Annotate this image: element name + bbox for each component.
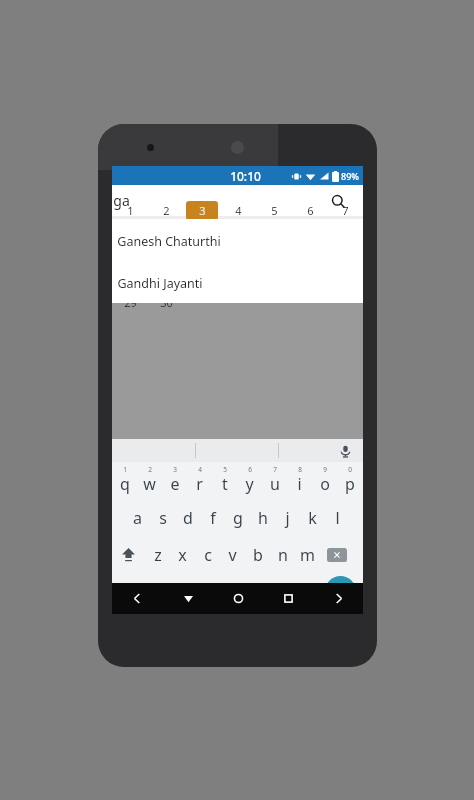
button[interactable]: Next: [313, 583, 363, 614]
staticText: 9: [163, 226, 170, 241]
button[interactable]: 1: [112, 462, 137, 499]
button[interactable]: Ganesh Chaturthi: [112, 219, 363, 263]
staticText: v: [228, 544, 237, 566]
staticText: d: [183, 507, 193, 529]
button[interactable]: Home: [213, 583, 263, 614]
button[interactable]: Shift: [112, 536, 145, 573]
button[interactable]: [172, 573, 294, 609]
button[interactable]: Previous: [112, 583, 163, 614]
button[interactable]: ?123: [112, 573, 148, 609]
button[interactable]: Backspace: [320, 536, 353, 573]
button[interactable]: .: [294, 573, 318, 609]
button[interactable]: 7: [262, 462, 287, 499]
staticText: 5: [223, 465, 227, 474]
button[interactable]: d: [175, 499, 200, 536]
staticText: 6: [248, 465, 252, 474]
button[interactable]: 9: [312, 462, 337, 499]
staticText: ,: [158, 578, 162, 597]
button[interactable]: Back: [163, 583, 213, 614]
button[interactable]: k: [300, 499, 325, 536]
button[interactable]: 6: [294, 201, 326, 220]
button[interactable]: 3: [186, 201, 218, 220]
button[interactable]: Search: [327, 190, 349, 212]
button[interactable]: h: [250, 499, 275, 536]
button[interactable]: j: [275, 499, 300, 536]
button[interactable]: Gandhi Jayanti: [112, 263, 363, 303]
button[interactable]: 6: [237, 462, 262, 499]
button[interactable]: 22: [114, 270, 146, 289]
staticText: y: [245, 473, 254, 495]
button[interactable]: 29: [114, 293, 146, 312]
staticText: 9: [323, 465, 327, 474]
button[interactable]: Recents: [263, 583, 313, 614]
button[interactable]: 5: [212, 462, 237, 499]
button[interactable]: 3: [162, 462, 187, 499]
button[interactable]: ,: [148, 573, 172, 609]
button[interactable]: b: [245, 536, 270, 573]
button[interactable]: s: [150, 499, 175, 536]
button[interactable]: 2: [137, 462, 162, 499]
staticText: 8: [298, 465, 302, 474]
staticText: i: [297, 473, 302, 495]
staticText: z: [154, 544, 162, 566]
button[interactable]: x: [170, 536, 195, 573]
button[interactable]: 8: [287, 462, 312, 499]
staticText: g: [233, 507, 243, 529]
button[interactable]: Voice input: [337, 443, 353, 459]
button[interactable]: g: [225, 499, 250, 536]
button[interactable]: 5: [258, 201, 290, 220]
button[interactable]: ga: [112, 185, 363, 216]
button[interactable]: 9: [150, 224, 182, 243]
staticText: 3: [199, 203, 206, 218]
button[interactable]: l: [325, 499, 350, 536]
staticText: f: [210, 507, 216, 529]
button[interactable]: 10: [186, 224, 218, 243]
staticText: w: [143, 473, 156, 495]
button[interactable]: 1: [114, 201, 146, 220]
staticText: 2: [163, 203, 170, 218]
staticText: 7: [342, 203, 349, 218]
button[interactable]: 0: [337, 462, 362, 499]
button[interactable]: v: [220, 536, 245, 573]
staticText: n: [278, 544, 288, 566]
button[interactable]: Enter: [318, 573, 363, 609]
button[interactable]: a: [125, 499, 150, 536]
button[interactable]: 4: [187, 462, 212, 499]
staticText: l: [335, 507, 340, 529]
button[interactable]: 23: [150, 270, 182, 289]
staticText: 0: [348, 465, 352, 474]
button[interactable]: 24: [186, 270, 218, 289]
button[interactable]: 30: [150, 293, 182, 312]
button[interactable]: 8: [114, 224, 146, 243]
button[interactable]: n: [270, 536, 295, 573]
button[interactable]: f: [200, 499, 225, 536]
button[interactable]: c: [195, 536, 220, 573]
button[interactable]: z: [145, 536, 170, 573]
button[interactable]: m: [295, 536, 320, 573]
button[interactable]: 2: [150, 201, 182, 220]
staticText: 4: [198, 465, 202, 474]
button[interactable]: 7: [330, 201, 361, 220]
button[interactable]: 4: [222, 201, 254, 220]
